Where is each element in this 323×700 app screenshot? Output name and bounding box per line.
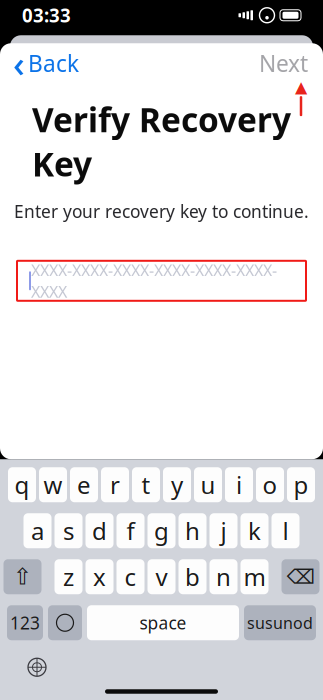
button[interactable]: f (116, 513, 144, 548)
staticText: c (124, 561, 136, 593)
button[interactable]: g (147, 513, 175, 548)
staticText: s (63, 515, 74, 547)
staticText: a (31, 515, 44, 547)
staticText: i (236, 469, 242, 501)
button[interactable]: v (147, 559, 175, 594)
staticText: y (171, 469, 183, 501)
button[interactable]: Next (244, 43, 323, 83)
staticText: q (14, 469, 29, 501)
staticText: Back (28, 48, 79, 78)
button[interactable]: a (23, 513, 51, 548)
button[interactable]: o (256, 467, 284, 502)
staticText: e (77, 469, 91, 501)
staticText: Verify Recovery Key (32, 97, 291, 186)
button[interactable]: w (39, 467, 67, 502)
button[interactable]: r (101, 467, 129, 502)
staticText: g (154, 515, 169, 547)
button[interactable]: m (240, 559, 268, 594)
button[interactable]: p (287, 467, 315, 502)
staticText: v (155, 561, 167, 593)
button[interactable]: space (87, 605, 239, 640)
staticText: w (43, 469, 62, 501)
staticText: susunod (247, 612, 313, 633)
staticText: ‹ (13, 39, 25, 87)
staticText: j (220, 515, 226, 547)
staticText: Next (259, 48, 308, 78)
staticText: b (185, 561, 200, 593)
staticText: u (200, 469, 215, 501)
staticText: z (63, 561, 74, 593)
button[interactable]: k (240, 513, 268, 548)
button[interactable]: Delete (281, 559, 319, 594)
staticText: ⇧ (13, 564, 32, 590)
staticText: f (126, 515, 134, 547)
button[interactable]: XXXX-XXXX-XXXX-XXXX-XXXX-XXXX-XXXX (17, 261, 306, 301)
button[interactable]: Shift (3, 559, 41, 594)
staticText: k (248, 515, 261, 547)
staticText: p (293, 469, 308, 501)
staticText: x (93, 561, 106, 593)
button[interactable]: ‹ (0, 43, 92, 83)
button[interactable]: Next keyboard (20, 653, 54, 681)
staticText: XXXX-XXXX-XXXX-XXXX-XXXX-XXXX-XXXX (31, 259, 277, 302)
staticText: 123 (10, 611, 40, 634)
button[interactable]: x (85, 559, 113, 594)
button[interactable]: Emoji (48, 605, 82, 640)
button[interactable]: y (163, 467, 191, 502)
staticText: h (185, 515, 200, 547)
button[interactable]: t (132, 467, 160, 502)
button[interactable]: i (225, 467, 253, 502)
button[interactable]: z (54, 559, 82, 594)
staticText: t (141, 469, 150, 501)
staticText: space (139, 611, 186, 634)
button[interactable]: q (8, 467, 36, 502)
button[interactable]: e (70, 467, 98, 502)
button[interactable]: d (85, 513, 113, 548)
button[interactable]: c (116, 559, 144, 594)
staticText: l (282, 515, 288, 547)
staticText: ▲ (295, 78, 307, 96)
button[interactable]: u (194, 467, 222, 502)
button[interactable]: l (271, 513, 299, 548)
staticText: 03:33 (22, 3, 71, 28)
staticText: o (262, 469, 277, 501)
button[interactable]: 123 (7, 605, 43, 640)
button[interactable]: b (178, 559, 206, 594)
button[interactable]: susunod (244, 605, 316, 640)
button[interactable]: j (209, 513, 237, 548)
button[interactable]: h (178, 513, 206, 548)
staticText: n (216, 561, 231, 593)
staticText: m (243, 561, 265, 593)
button[interactable]: s (54, 513, 82, 548)
button[interactable]: n (209, 559, 237, 594)
staticText: d (92, 515, 107, 547)
staticText: ⌫ (286, 565, 314, 588)
staticText: r (110, 469, 120, 501)
staticText: Enter your recovery key to continue. (14, 200, 309, 223)
